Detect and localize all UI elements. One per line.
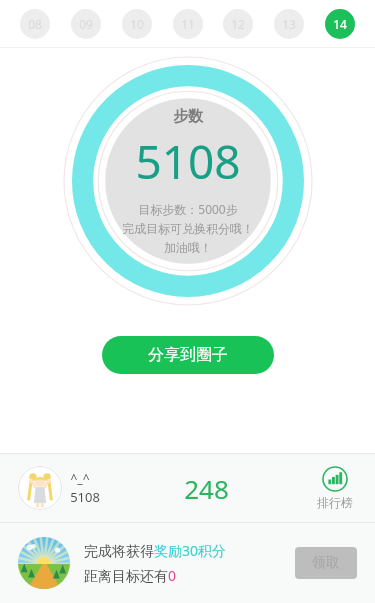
button[interactable]: 10 [122, 9, 152, 39]
staticText: 13 [282, 16, 296, 32]
button[interactable]: 13 [274, 9, 304, 39]
staticText: 分享到圈子 [148, 345, 228, 365]
staticText: 5108 [70, 488, 100, 506]
staticText: 完成将获得奖励30积分 [84, 541, 227, 560]
staticText: 08 [28, 16, 42, 32]
staticText: 步数 [173, 107, 203, 126]
staticText: 目标步数：5000步 [138, 201, 238, 217]
staticText: 排行榜 [317, 495, 353, 510]
staticText: 14 [333, 16, 347, 32]
staticText: 12 [231, 16, 245, 32]
staticText: 加油哦！ [164, 240, 212, 255]
button[interactable]: 09 [71, 9, 101, 39]
staticText: 领取 [312, 554, 340, 572]
staticText: 09 [79, 16, 93, 32]
button[interactable]: 11 [173, 9, 203, 39]
staticText: 11 [181, 16, 195, 32]
button[interactable]: 分享到圈子 [102, 336, 274, 374]
button[interactable]: 领取 [295, 547, 357, 579]
staticText: 5108 [135, 130, 241, 193]
staticText: 10 [130, 16, 144, 32]
staticText: 248 [184, 471, 229, 506]
button[interactable]: 排行榜 [313, 466, 357, 510]
button[interactable]: 14 [325, 9, 355, 39]
staticText: 完成目标可兑换积分哦！ [122, 221, 254, 236]
other: 排行榜 [322, 466, 348, 492]
staticText: 距离目标还有0 [84, 566, 177, 585]
button[interactable]: 12 [223, 9, 253, 39]
staticText: ^_^ [70, 470, 90, 486]
button[interactable]: ^_^ [18, 466, 100, 510]
button[interactable]: 08 [20, 9, 50, 39]
